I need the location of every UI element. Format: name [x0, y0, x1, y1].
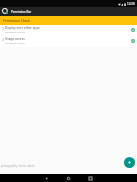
button[interactable]: Home [65, 175, 71, 181]
staticText: privacy policy terms about [1, 164, 35, 168]
staticText: 12:30 [127, 2, 135, 6]
button[interactable]: Add [124, 157, 135, 168]
staticText: 1 [2, 26, 4, 31]
staticText: Display over other apps [5, 26, 40, 30]
staticText: Permission Bar [11, 10, 32, 14]
button[interactable]: 2 [0, 36, 137, 47]
button[interactable]: Back [43, 175, 49, 181]
button[interactable]: Granted [131, 28, 135, 32]
staticText: 2 [2, 37, 4, 42]
button[interactable]: Recent apps [87, 175, 93, 181]
button[interactable]: Granted [131, 39, 135, 43]
staticText: Permission granted [5, 42, 25, 45]
button[interactable]: App logo [2, 8, 8, 14]
staticText: Permission Check [3, 19, 30, 23]
staticText: Usage access [5, 37, 25, 41]
staticText: Permission granted [5, 31, 25, 34]
button[interactable]: 1 [0, 25, 137, 36]
